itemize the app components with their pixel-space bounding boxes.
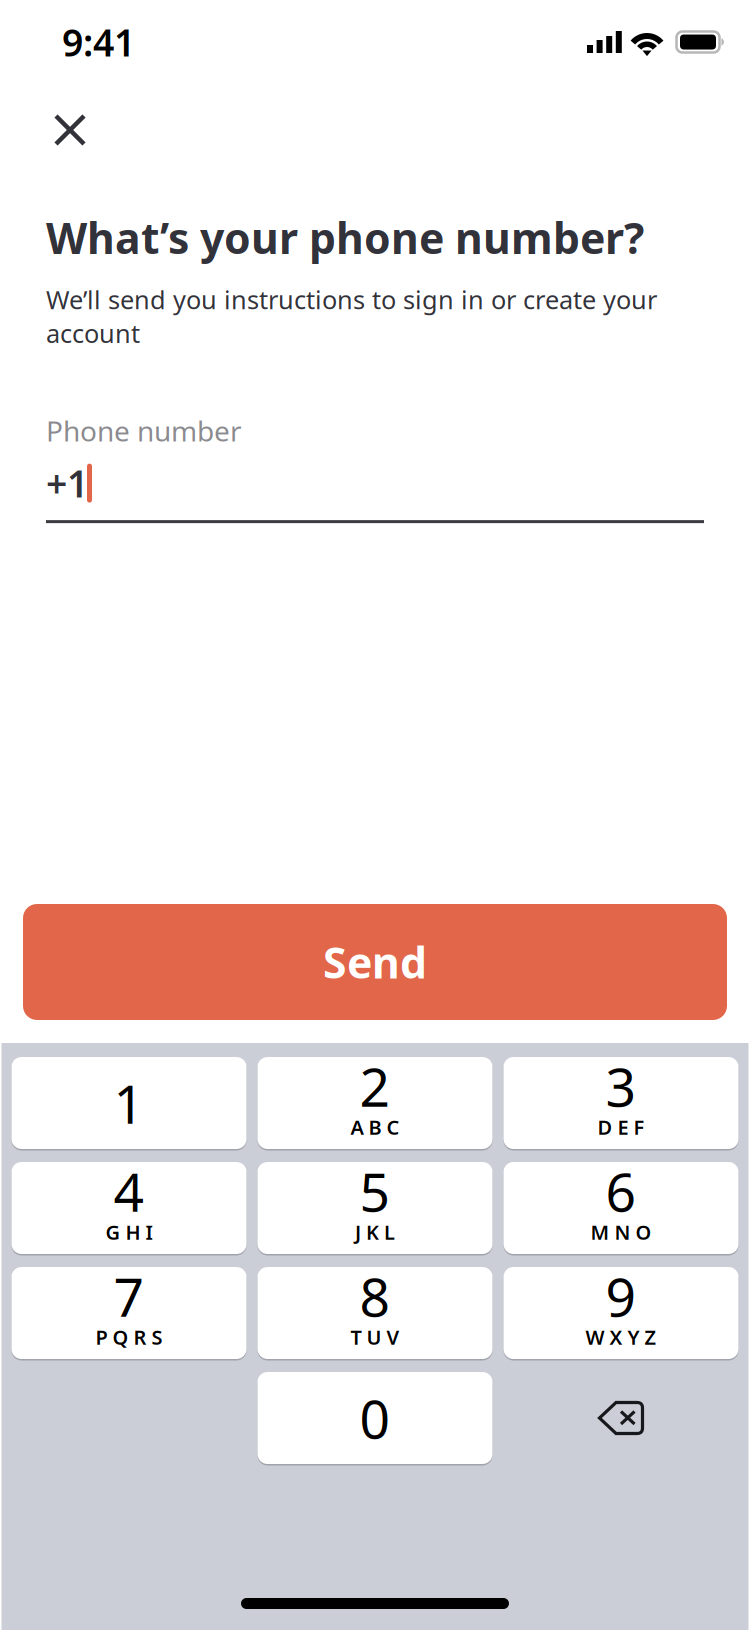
button[interactable]: Send	[23, 904, 727, 1020]
staticText: W X Y Z	[585, 1324, 656, 1350]
staticText: Phone number	[46, 412, 242, 449]
button[interactable]: 9	[503, 1267, 738, 1359]
button[interactable]: 8	[257, 1267, 492, 1359]
staticText: T U V	[350, 1324, 399, 1350]
staticText: P Q R S	[95, 1324, 162, 1350]
button[interactable]: 6	[503, 1162, 738, 1254]
staticText: 8	[359, 1261, 390, 1331]
button[interactable]: Delete	[503, 1372, 738, 1464]
staticText: 0	[359, 1383, 390, 1453]
button[interactable]: 0	[257, 1372, 492, 1464]
staticText: 4	[113, 1156, 144, 1226]
staticText: 2	[359, 1051, 390, 1121]
button[interactable]: 3	[503, 1057, 738, 1149]
button[interactable]: Close	[34, 84, 106, 156]
staticText: G H I	[105, 1219, 152, 1245]
staticText: 7	[113, 1261, 144, 1331]
staticText: D E F	[597, 1114, 644, 1140]
button[interactable]: 4	[11, 1162, 246, 1254]
staticText: Send	[323, 934, 427, 990]
button[interactable]: Phone number	[46, 412, 704, 523]
staticText: J K L	[355, 1219, 395, 1245]
button[interactable]: 2	[257, 1057, 492, 1149]
staticText: 9	[605, 1261, 636, 1331]
staticText: 3	[605, 1051, 636, 1121]
staticText: We’ll send you instructions to sign in o…	[46, 283, 657, 350]
staticText: 9:41	[62, 17, 135, 67]
staticText: A B C	[350, 1114, 399, 1140]
staticText: 1	[113, 1068, 144, 1138]
button[interactable]: 1	[11, 1057, 246, 1149]
staticText: 5	[359, 1156, 390, 1226]
staticText: What’s your phone number?	[46, 209, 644, 266]
button[interactable]: 7	[11, 1267, 246, 1359]
staticText: +1	[46, 458, 88, 508]
button[interactable]: 5	[257, 1162, 492, 1254]
staticText: M N O	[590, 1219, 651, 1245]
staticText: 6	[605, 1156, 636, 1226]
